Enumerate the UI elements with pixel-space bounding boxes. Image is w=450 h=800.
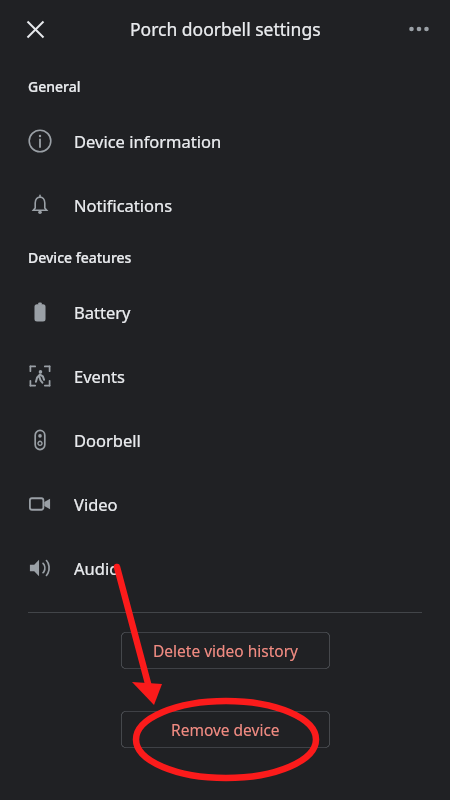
button[interactable]: More options [397,7,441,51]
button[interactable]: Doorbell [0,408,450,472]
staticText: Events [74,365,125,387]
button[interactable]: Close [13,7,57,51]
button[interactable]: Notifications [0,173,450,237]
button[interactable]: Battery [0,280,450,344]
staticText: Audio [74,557,120,579]
button[interactable]: Events [0,344,450,408]
staticText: Device features [28,248,132,267]
staticText: Delete video history [153,640,299,661]
button[interactable]: Delete video history [121,632,330,669]
button[interactable]: Video [0,472,450,536]
button[interactable]: Device information [0,109,450,173]
staticText: Notifications [74,194,173,216]
staticText: General [28,77,81,96]
button[interactable]: Remove device [121,711,330,748]
staticText: Device information [74,130,222,152]
staticText: Remove device [171,719,280,740]
staticText: Porch doorbell settings [130,17,321,41]
button[interactable]: Audio [0,536,450,600]
staticText: Doorbell [74,429,141,451]
staticText: Video [74,493,118,515]
staticText: Battery [74,301,131,323]
